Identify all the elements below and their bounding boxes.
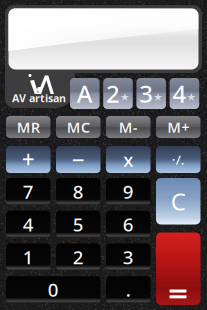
- staticText: 5: [73, 212, 84, 237]
- staticText: ★: [153, 91, 163, 103]
- staticText: M+: [167, 117, 189, 137]
- staticText: ★: [120, 91, 130, 103]
- button[interactable]: ·/.: [156, 146, 200, 173]
- button[interactable]: M+: [156, 116, 200, 138]
- staticText: ·/.: [172, 151, 185, 168]
- button[interactable]: 9: [106, 178, 150, 205]
- staticText: ★: [186, 91, 196, 103]
- button[interactable]: 4: [170, 78, 199, 109]
- button[interactable]: M-: [106, 116, 150, 138]
- staticText: 1: [23, 244, 34, 269]
- staticText: x: [123, 147, 133, 172]
- button[interactable]: 1: [6, 243, 50, 270]
- button[interactable]: 7: [6, 178, 50, 205]
- button[interactable]: 3: [106, 243, 150, 270]
- staticText: MR: [17, 117, 40, 137]
- staticText: 3: [139, 78, 153, 109]
- button[interactable]: −: [56, 146, 100, 173]
- button[interactable]: C: [156, 178, 200, 224]
- staticText: 2: [73, 244, 84, 269]
- button[interactable]: 6: [106, 211, 150, 238]
- staticText: .: [126, 277, 131, 302]
- staticText: M-: [119, 117, 138, 137]
- staticText: 4: [23, 212, 34, 237]
- staticText: 9: [123, 179, 134, 204]
- button[interactable]: +: [6, 146, 50, 173]
- button[interactable]: 2: [103, 78, 133, 109]
- staticText: +: [22, 144, 35, 174]
- button[interactable]: A: [70, 78, 100, 109]
- staticText: 7: [23, 179, 34, 204]
- staticText: 0: [48, 277, 59, 302]
- button[interactable]: 3: [136, 78, 166, 109]
- button[interactable]: [156, 232, 200, 305]
- button[interactable]: MC: [56, 116, 100, 138]
- staticText: AV artisan: [12, 91, 66, 105]
- button[interactable]: 2: [56, 243, 100, 270]
- staticText: 2: [106, 78, 120, 109]
- button[interactable]: 4: [6, 211, 50, 238]
- staticText: 6: [123, 212, 134, 237]
- button[interactable]: 8: [56, 178, 100, 205]
- staticText: A: [77, 78, 93, 109]
- staticText: C: [171, 185, 186, 217]
- staticText: −: [72, 144, 85, 174]
- button[interactable]: 5: [56, 211, 100, 238]
- staticText: 4: [172, 78, 186, 109]
- staticText: 8: [73, 179, 84, 204]
- button[interactable]: 0: [6, 276, 100, 303]
- staticText: 3: [123, 244, 134, 269]
- button[interactable]: .: [106, 276, 150, 303]
- button[interactable]: MR: [6, 116, 50, 138]
- button[interactable]: x: [106, 146, 150, 173]
- staticText: MC: [67, 117, 90, 137]
